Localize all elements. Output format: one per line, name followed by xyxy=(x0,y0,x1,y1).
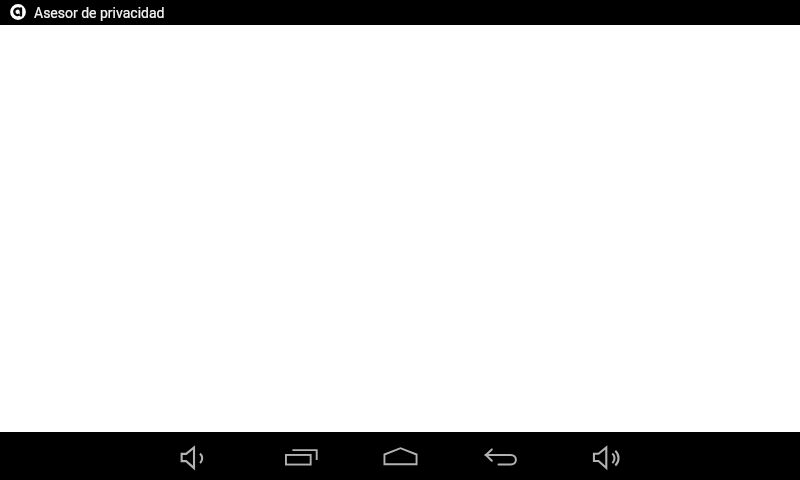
button[interactable]: Volume up xyxy=(582,432,630,480)
button[interactable]: Volume down xyxy=(168,432,216,480)
button[interactable]: App icon xyxy=(8,2,28,22)
button[interactable]: Back xyxy=(476,432,524,480)
staticText: Asesor de privacidad xyxy=(34,5,165,21)
button[interactable]: Home xyxy=(376,432,424,480)
button[interactable]: Recents xyxy=(275,432,323,480)
